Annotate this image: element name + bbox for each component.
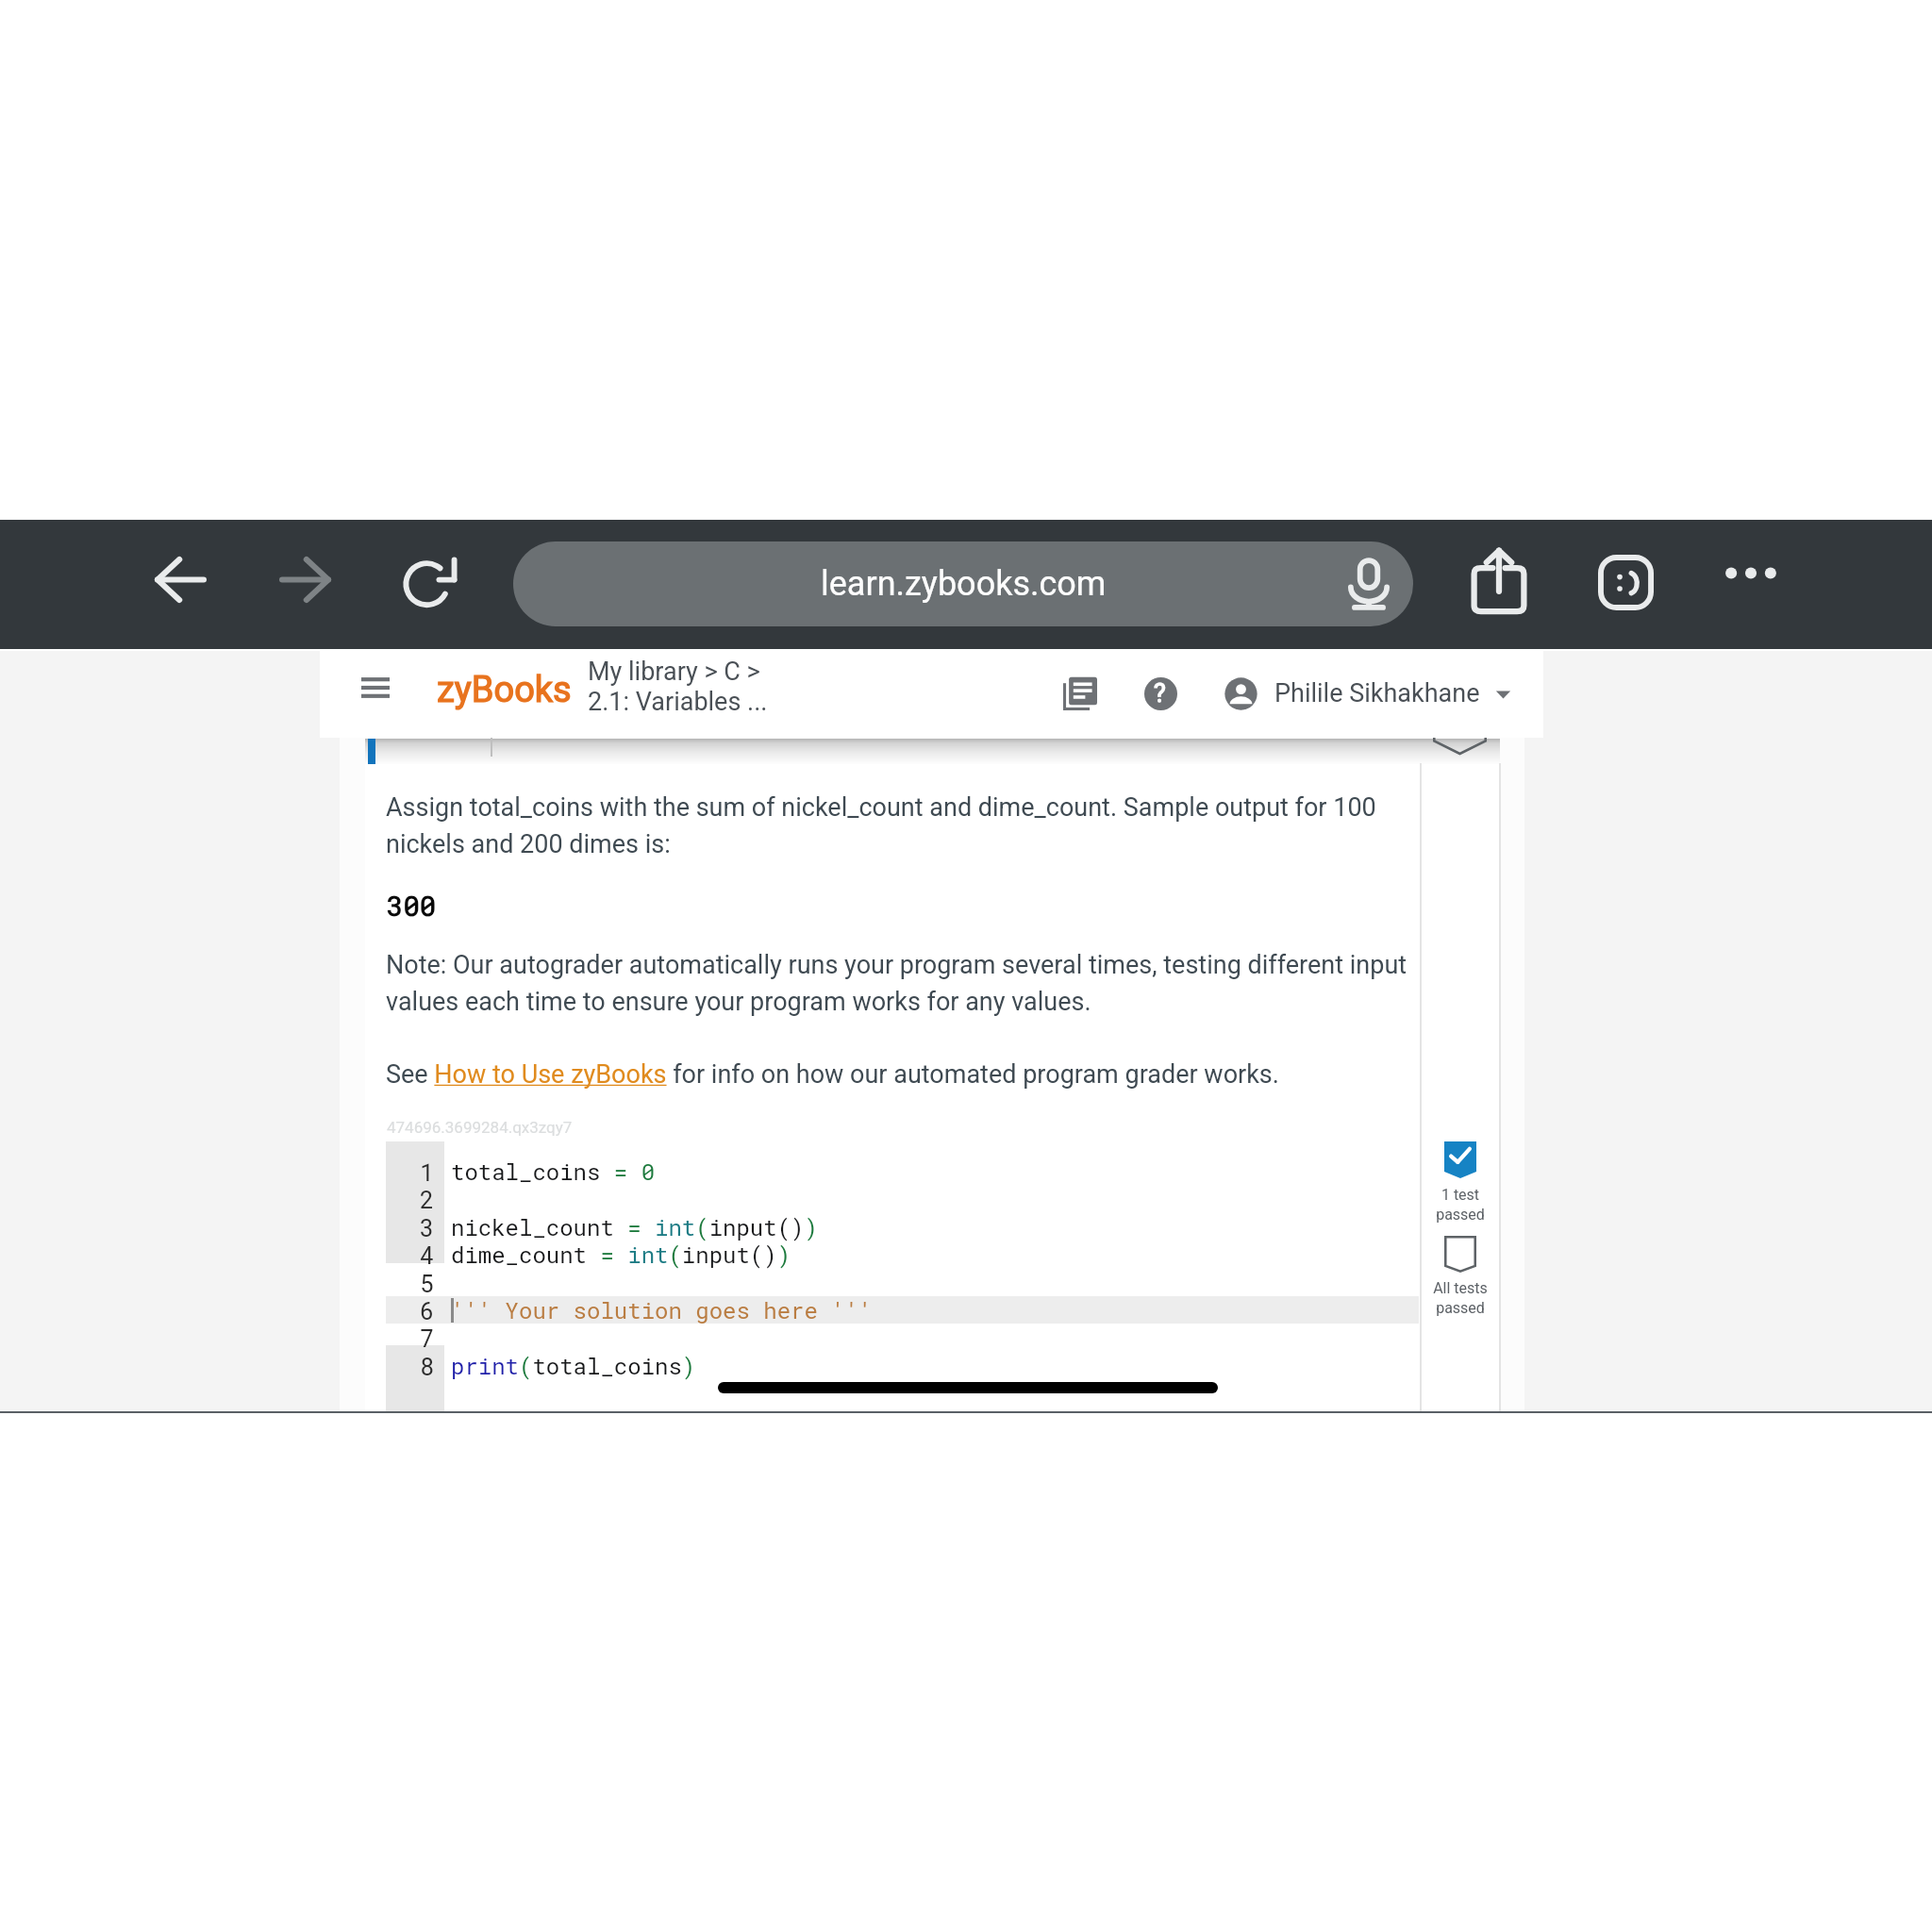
staticText: Note: Our autograder automatically runs … <box>386 950 1433 1016</box>
staticText: 1 <box>420 1157 435 1188</box>
button[interactable]: Menu <box>361 677 390 698</box>
button[interactable]: zyBooks <box>437 669 572 711</box>
button[interactable]: More options <box>1724 561 1778 585</box>
staticText: zyBooks <box>437 669 572 711</box>
staticText: 5 <box>420 1268 435 1299</box>
button[interactable]: Reload <box>403 545 461 604</box>
staticText: learn.zybooks.com <box>821 564 1107 604</box>
staticText: 3 <box>420 1212 435 1243</box>
staticText: nickel_count = int(input()) <box>451 1212 818 1242</box>
staticText: 4 <box>420 1240 435 1271</box>
staticText: ? <box>1154 678 1166 708</box>
staticText: 2 <box>420 1184 435 1215</box>
button[interactable]: Share <box>1468 547 1530 614</box>
staticText: Assign total_coins with the sum of nicke… <box>386 792 1424 858</box>
staticText: My library > C > <box>588 657 760 687</box>
staticText: 474696.3699284.qx3zqy7 <box>387 1118 573 1137</box>
button[interactable]: Forward <box>279 557 331 603</box>
button[interactable]: learn.zybooks.com <box>513 541 1413 626</box>
staticText: total_coins = 0 <box>451 1157 656 1187</box>
staticText: 2.1: Variables ... <box>588 687 768 717</box>
button[interactable]: Philile Sikhakhane <box>1224 660 1511 726</box>
staticText: All tests passed <box>1422 1279 1499 1317</box>
button[interactable]: Help <box>1144 677 1177 710</box>
staticText: 6 <box>420 1295 435 1326</box>
button[interactable]: Tabs <box>1598 555 1654 610</box>
staticText: print(total_coins) <box>451 1351 696 1381</box>
button[interactable]: Back <box>155 557 207 603</box>
staticText: ''' Your solution goes here ''' <box>451 1295 873 1325</box>
staticText: 300 <box>387 888 437 924</box>
staticText: 1 test passed <box>1422 1186 1499 1224</box>
staticText: Philile Sikhakhane <box>1274 678 1480 708</box>
staticText: 8 <box>420 1351 435 1382</box>
staticText: dime_count = int(input()) <box>451 1240 791 1270</box>
staticText: 7 <box>420 1323 435 1354</box>
button[interactable]: Notes <box>1063 676 1097 710</box>
staticText: See How to Use zyBooks for info on how o… <box>386 1059 1279 1090</box>
